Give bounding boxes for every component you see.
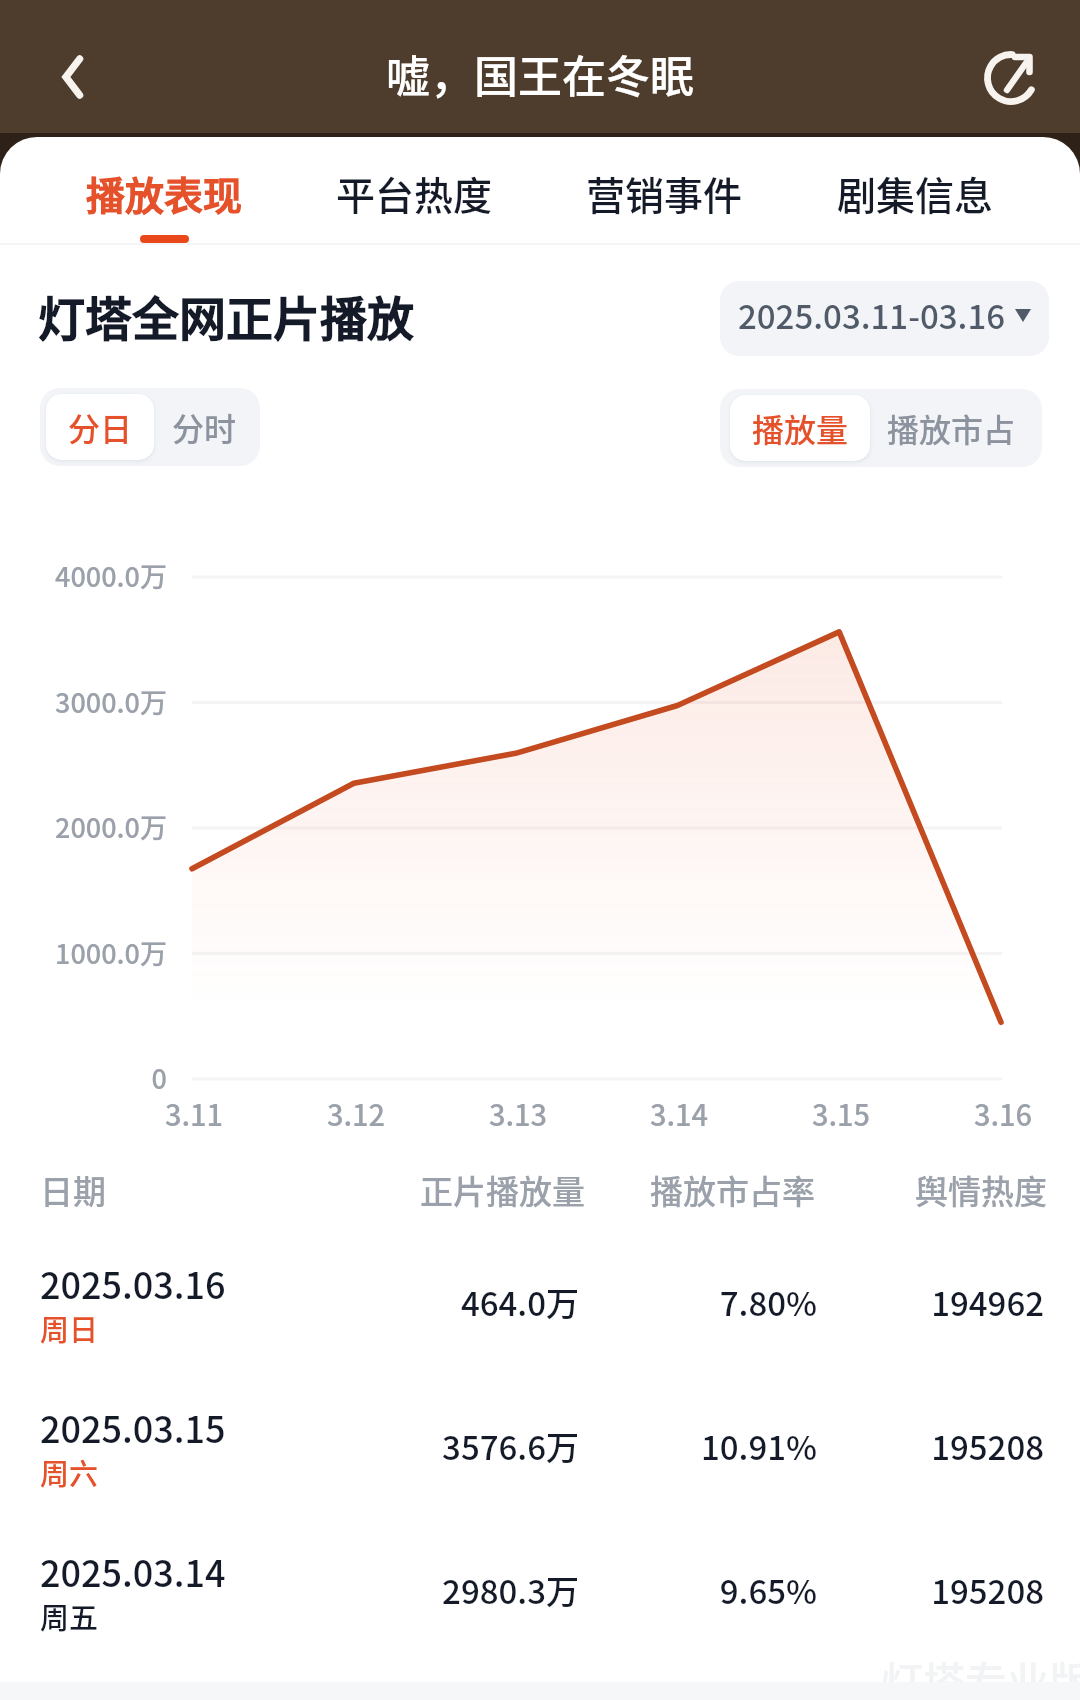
staticText: 195208 <box>814 1566 1044 1614</box>
button[interactable]: 播放量 <box>730 395 870 461</box>
staticText: 10.91% <box>579 1422 817 1470</box>
staticText: 9.65% <box>579 1566 817 1614</box>
staticText: 3.11 <box>134 1092 254 1134</box>
staticText: 2025.03.15 <box>40 1401 226 1453</box>
staticText: 周日 <box>40 1307 99 1349</box>
staticText: 正片播放量 <box>346 1166 585 1214</box>
staticText: 日期 <box>40 1166 106 1214</box>
staticText: 3.12 <box>296 1092 416 1134</box>
button[interactable]: 播放市占 <box>870 395 1032 461</box>
staticText: 2025.03.14 <box>40 1545 226 1597</box>
button[interactable]: 分时 <box>154 394 254 460</box>
button[interactable]: 2025.03.16 <box>0 1251 1080 1371</box>
button[interactable]: 播放表现 <box>39 165 289 265</box>
staticText: 播放市占率 <box>585 1166 815 1214</box>
button[interactable]: 2025.03.15 <box>0 1395 1080 1515</box>
staticText: 3576.6万 <box>346 1422 579 1470</box>
staticText: 舆情热度 <box>815 1166 1047 1214</box>
staticText: 2980.3万 <box>346 1566 579 1614</box>
staticText: 分日 <box>68 404 133 450</box>
staticText: 营销事件 <box>586 165 743 221</box>
staticText: 3.13 <box>458 1092 578 1134</box>
button[interactable]: 分日 <box>46 394 154 460</box>
staticText: 7.80% <box>579 1278 817 1326</box>
button[interactable]: 2025.03.11-03.16 <box>720 281 1049 356</box>
staticText: 灯塔全网正片播放 <box>38 281 414 349</box>
staticText: 分时 <box>172 404 237 450</box>
staticText: 2000.0万 <box>33 807 167 846</box>
staticText: 464.0万 <box>346 1278 579 1326</box>
staticText: 3.15 <box>781 1092 901 1134</box>
staticText: 播放市占 <box>887 405 1016 451</box>
button[interactable]: 剧集信息 <box>790 165 1041 265</box>
button[interactable]: 2025.03.14 <box>0 1539 1080 1659</box>
staticText: 194962 <box>814 1278 1044 1326</box>
staticText: 嘘，国王在冬眠 <box>0 42 1080 106</box>
staticText: 播放量 <box>752 405 849 451</box>
staticText: 195208 <box>814 1422 1044 1470</box>
button[interactable]: Share <box>984 51 1042 109</box>
staticText: 剧集信息 <box>837 165 994 221</box>
staticText: 3.16 <box>943 1092 1063 1134</box>
staticText: 2025.03.11-03.16 <box>738 291 1006 339</box>
button[interactable]: 营销事件 <box>539 165 790 265</box>
staticText: 3000.0万 <box>33 682 167 721</box>
staticText: 播放表现 <box>86 165 243 221</box>
staticText: 周六 <box>40 1451 99 1493</box>
staticText: 1000.0万 <box>33 933 167 972</box>
staticText: 0 <box>33 1058 167 1097</box>
staticText: 灯塔专业版 <box>881 1649 1080 1700</box>
staticText: 3.14 <box>619 1092 739 1134</box>
button[interactable]: Back <box>37 41 109 113</box>
staticText: 2025.03.16 <box>40 1257 226 1309</box>
staticText: 平台热度 <box>336 165 493 221</box>
staticText: 周五 <box>40 1595 99 1637</box>
button[interactable]: 平台热度 <box>289 165 539 265</box>
staticText: 4000.0万 <box>33 556 167 595</box>
